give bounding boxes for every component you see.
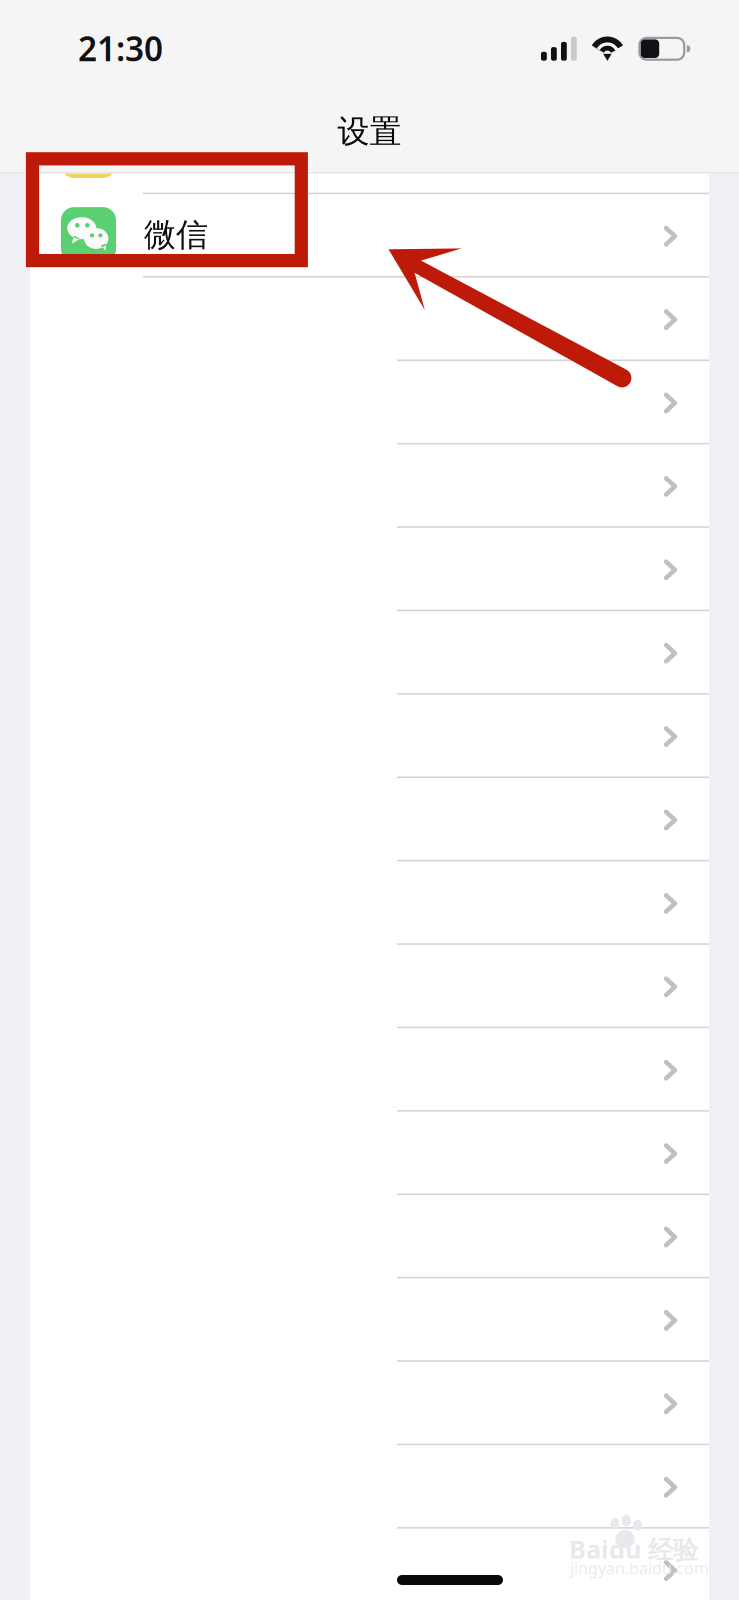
- staticText: Baidu 经验: [569, 1532, 698, 1566]
- staticText: 设置: [337, 112, 401, 151]
- button[interactable]: Settings item: [30, 278, 709, 361]
- button[interactable]: Settings item: [30, 1029, 709, 1112]
- button[interactable]: Settings item: [30, 862, 709, 945]
- button[interactable]: Settings item: [30, 1446, 709, 1529]
- button[interactable]: Settings item: [30, 361, 709, 445]
- button[interactable]: Settings item: [30, 1279, 709, 1362]
- button[interactable]: Settings item: [30, 528, 709, 612]
- staticText: jingyan.baidu.com: [570, 1557, 709, 1579]
- button[interactable]: Settings item: [30, 1112, 709, 1195]
- button[interactable]: Settings item: [30, 945, 709, 1029]
- button[interactable]: Settings item: [30, 695, 709, 778]
- button[interactable]: Settings item: [30, 612, 709, 695]
- button[interactable]: Settings item: [30, 778, 709, 862]
- button[interactable]: 微信: [30, 195, 709, 278]
- button[interactable]: Settings item: [30, 1362, 709, 1446]
- button[interactable]: Settings item: [30, 445, 709, 528]
- staticText: 微信: [144, 215, 208, 254]
- button[interactable]: Settings item: [30, 1529, 709, 1600]
- button[interactable]: Settings item: [30, 173, 709, 195]
- staticText: 21:30: [78, 26, 163, 70]
- button[interactable]: Settings item: [30, 1195, 709, 1279]
